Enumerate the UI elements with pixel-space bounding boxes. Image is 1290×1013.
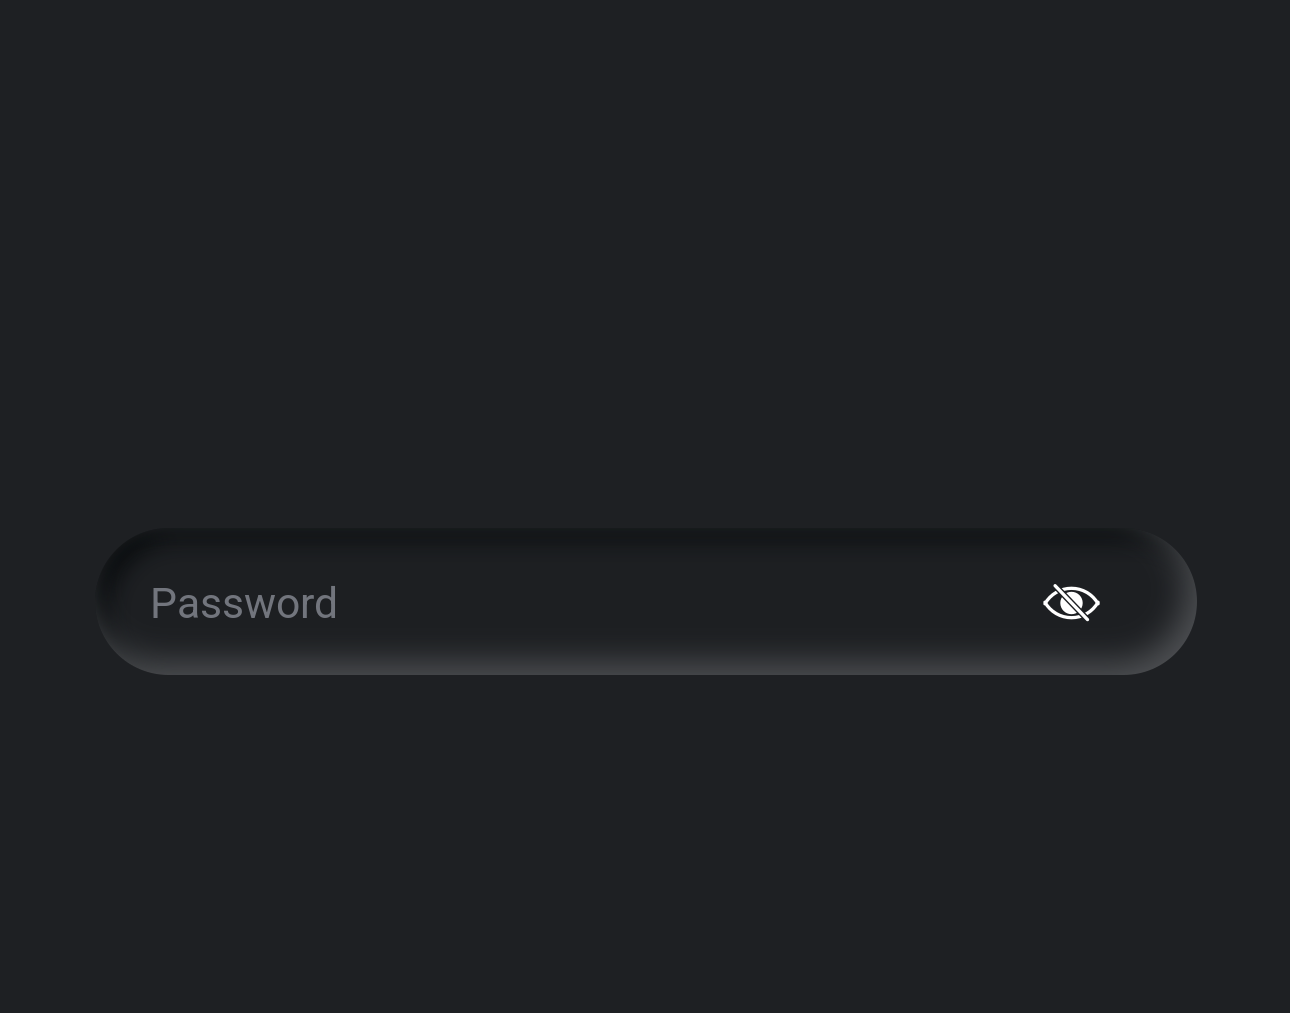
button[interactable]: Password [95,528,1197,675]
staticText: Password [150,578,338,628]
secureTextField[interactable]: Password [95,528,1197,675]
button[interactable]: Hide password [1023,551,1119,655]
